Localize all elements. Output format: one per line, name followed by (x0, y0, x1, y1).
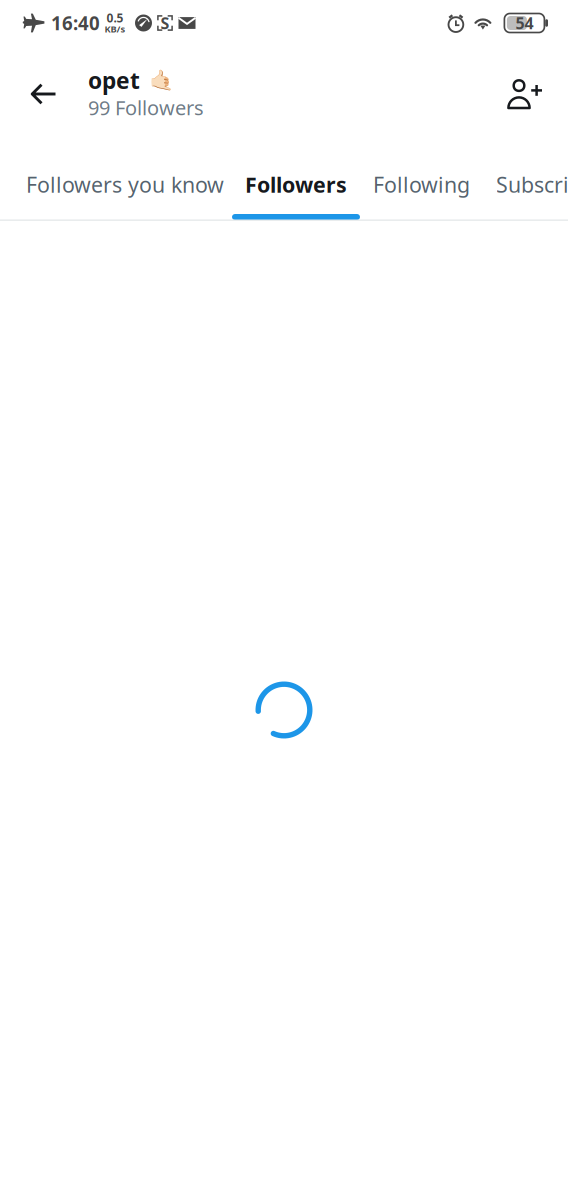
staticText: S (160, 12, 169, 34)
staticText: KB/s (104, 23, 125, 35)
button[interactable]: Followers you know (8, 155, 232, 220)
staticText: Followers you know (26, 170, 224, 199)
button[interactable]: Followers (232, 155, 360, 220)
staticText: opet (88, 65, 140, 95)
staticText: 🤙🏻 (149, 69, 174, 92)
button[interactable]: Back (21, 64, 67, 124)
staticText: 54 (515, 12, 533, 34)
staticText: Followers (245, 170, 347, 199)
button[interactable]: Subscriptions (483, 155, 568, 220)
staticText: 0.5 (106, 10, 123, 26)
button[interactable]: Add friends (502, 64, 548, 124)
staticText: Subscriptions (496, 170, 568, 199)
staticText: 16:40 (51, 11, 100, 35)
staticText: 99 Followers (88, 94, 204, 121)
button[interactable]: Following (360, 155, 483, 220)
staticText: Following (373, 170, 470, 199)
